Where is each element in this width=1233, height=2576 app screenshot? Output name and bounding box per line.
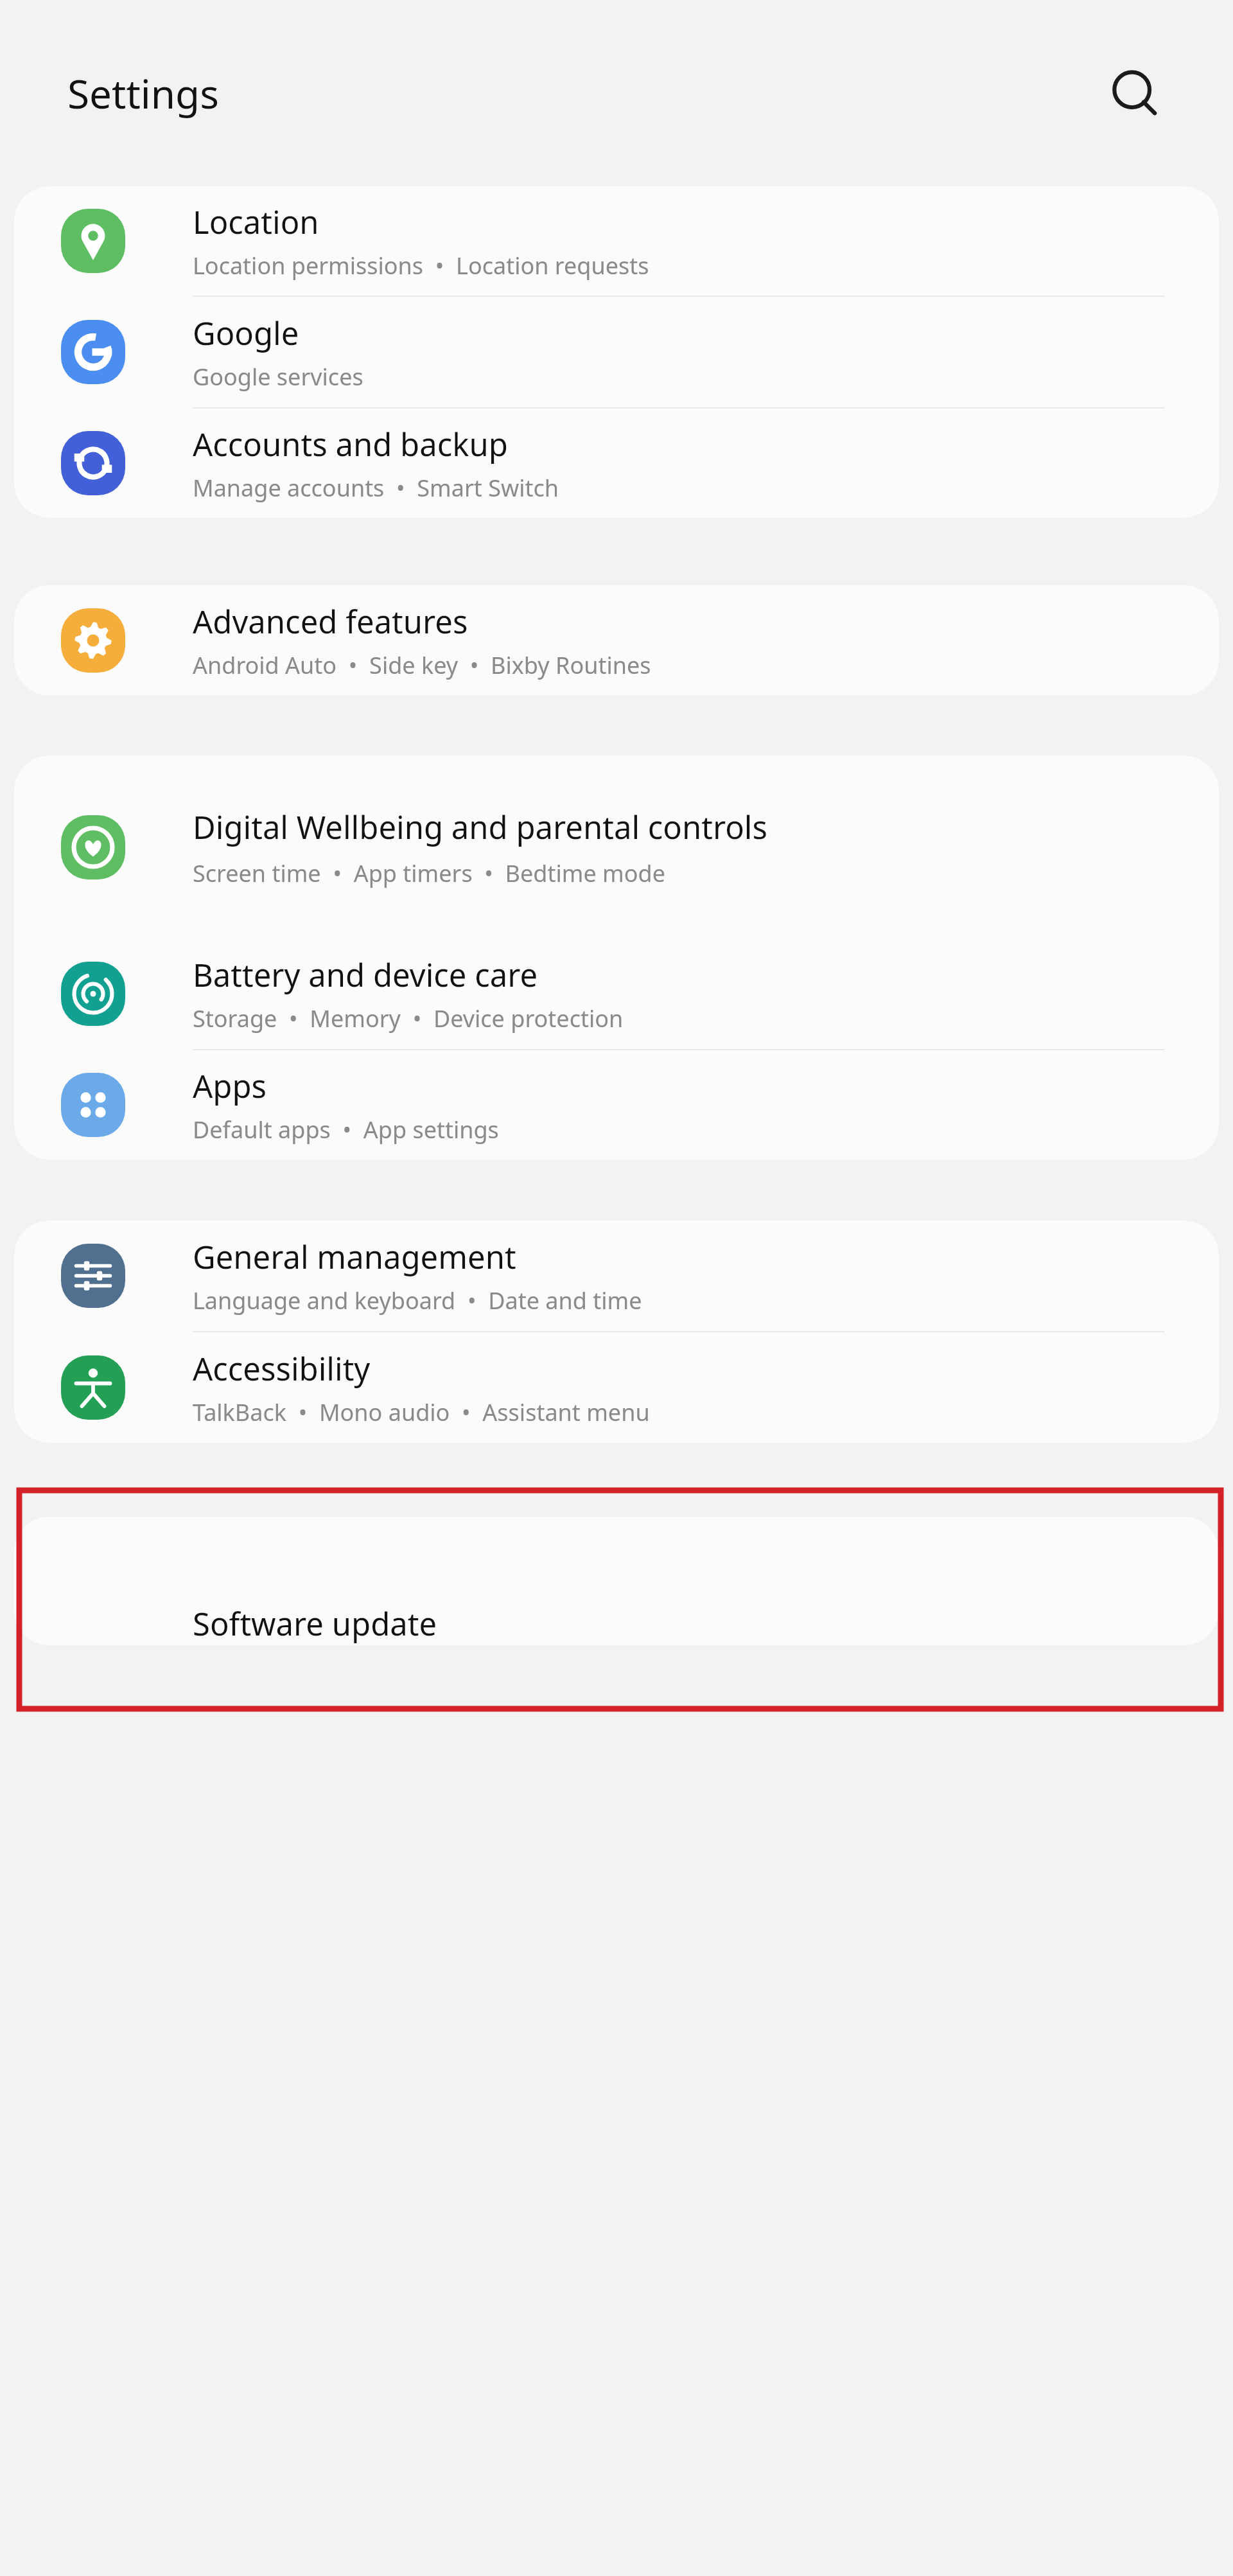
button[interactable]: Apps bbox=[14, 1050, 1219, 1160]
staticText: Software update bbox=[193, 1602, 437, 1645]
staticText: Apps bbox=[193, 1064, 267, 1107]
staticText: Advanced features bbox=[193, 600, 468, 643]
button[interactable]: Search bbox=[1104, 62, 1166, 124]
staticText: Battery and device care bbox=[193, 953, 538, 996]
button[interactable]: Battery and device care bbox=[14, 939, 1219, 1049]
button[interactable]: Google bbox=[14, 297, 1219, 407]
staticText: Location permissions • Location requests bbox=[193, 250, 649, 281]
button[interactable]: Advanced features bbox=[14, 585, 1219, 696]
staticText: Android Auto • Side key • Bixby Routines bbox=[193, 649, 651, 681]
staticText: Screen time • App timers • Bedtime mode bbox=[193, 858, 665, 889]
button[interactable]: Software update bbox=[14, 1517, 1219, 1645]
staticText: Manage accounts • Smart Switch bbox=[193, 472, 559, 504]
staticText: TalkBack • Mono audio • Assistant menu bbox=[193, 1397, 650, 1428]
staticText: General management bbox=[193, 1235, 516, 1278]
staticText: Google services bbox=[193, 361, 363, 393]
staticText: Digital Wellbeing and parental controls bbox=[193, 806, 767, 849]
button[interactable]: Digital Wellbeing and parental controls bbox=[14, 755, 1219, 939]
staticText: Settings bbox=[67, 66, 219, 120]
staticText: Default apps • App settings bbox=[193, 1114, 499, 1145]
staticText: Google bbox=[193, 312, 299, 355]
staticText: Accessibility bbox=[193, 1347, 371, 1390]
button[interactable]: Accessibility bbox=[14, 1332, 1219, 1443]
button[interactable]: Location bbox=[14, 186, 1219, 296]
staticText: Location bbox=[193, 200, 319, 243]
staticText: Storage • Memory • Device protection bbox=[193, 1003, 624, 1034]
staticText: Accounts and backup bbox=[193, 423, 508, 466]
button[interactable]: General management bbox=[14, 1221, 1219, 1331]
button[interactable]: Accounts and backup bbox=[14, 409, 1219, 518]
staticText: Language and keyboard • Date and time bbox=[193, 1285, 642, 1316]
